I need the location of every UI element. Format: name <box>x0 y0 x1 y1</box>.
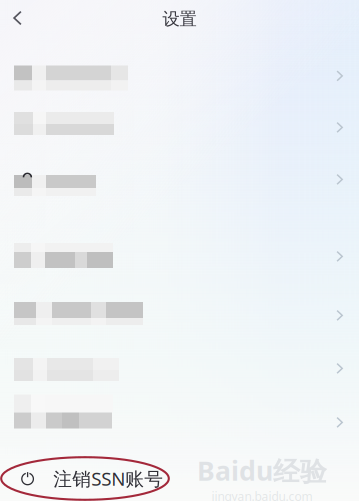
button[interactable]: 返回 <box>0 1 33 36</box>
staticText: 设置 <box>162 8 196 30</box>
button[interactable] <box>0 101 359 153</box>
button[interactable] <box>0 289 359 341</box>
button[interactable] <box>0 396 359 448</box>
button[interactable] <box>0 153 359 205</box>
staticText: jingyan.baidu.com <box>211 488 312 501</box>
staticText: 注销SSN账号 <box>53 466 163 491</box>
button[interactable]: 注销SSN账号 <box>0 455 359 501</box>
button[interactable] <box>0 50 359 101</box>
button[interactable] <box>0 230 359 282</box>
button[interactable] <box>0 342 359 394</box>
staticText: Baidu经验 <box>197 453 327 488</box>
